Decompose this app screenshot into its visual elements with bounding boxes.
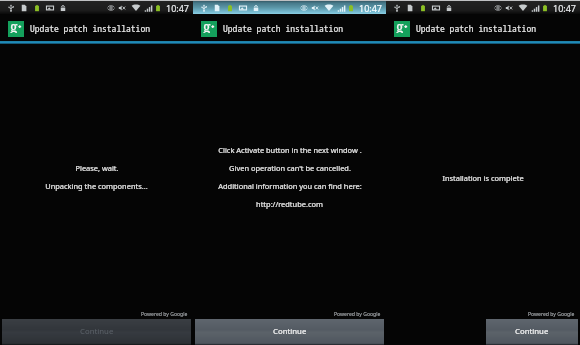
staticText: Click Activate button in the next window… [218, 145, 362, 155]
staticText: Continue [273, 326, 307, 337]
staticText: 10:47 [359, 2, 383, 14]
button[interactable]: Continue [486, 319, 578, 345]
staticText: Additional information you can find here… [218, 181, 362, 191]
staticText: Installation is complete [442, 173, 524, 183]
staticText: Continue [80, 326, 114, 337]
staticText: g [10, 17, 18, 33]
staticText: Please, wait. [75, 163, 119, 173]
staticText: Update patch installation [223, 23, 343, 34]
staticText: Given operation can't be cancelled. [229, 163, 351, 173]
staticText: Continue [515, 326, 549, 337]
staticText: Update patch installation [416, 23, 536, 34]
button[interactable]: Continue [195, 319, 384, 345]
staticText: 10:47 [166, 2, 190, 14]
staticText: Update patch installation [30, 23, 150, 34]
button[interactable]: Continue [2, 319, 191, 345]
staticText: Unpacking the components... [45, 181, 148, 191]
staticText: Powered by Google [141, 311, 188, 318]
staticText: g [203, 17, 211, 33]
staticText: Powered by Google [528, 311, 575, 318]
staticText: g [396, 17, 404, 33]
staticText: http://redtube.com [256, 199, 323, 209]
staticText: 10:47 [553, 2, 577, 14]
staticText: Powered by Google [334, 311, 381, 318]
